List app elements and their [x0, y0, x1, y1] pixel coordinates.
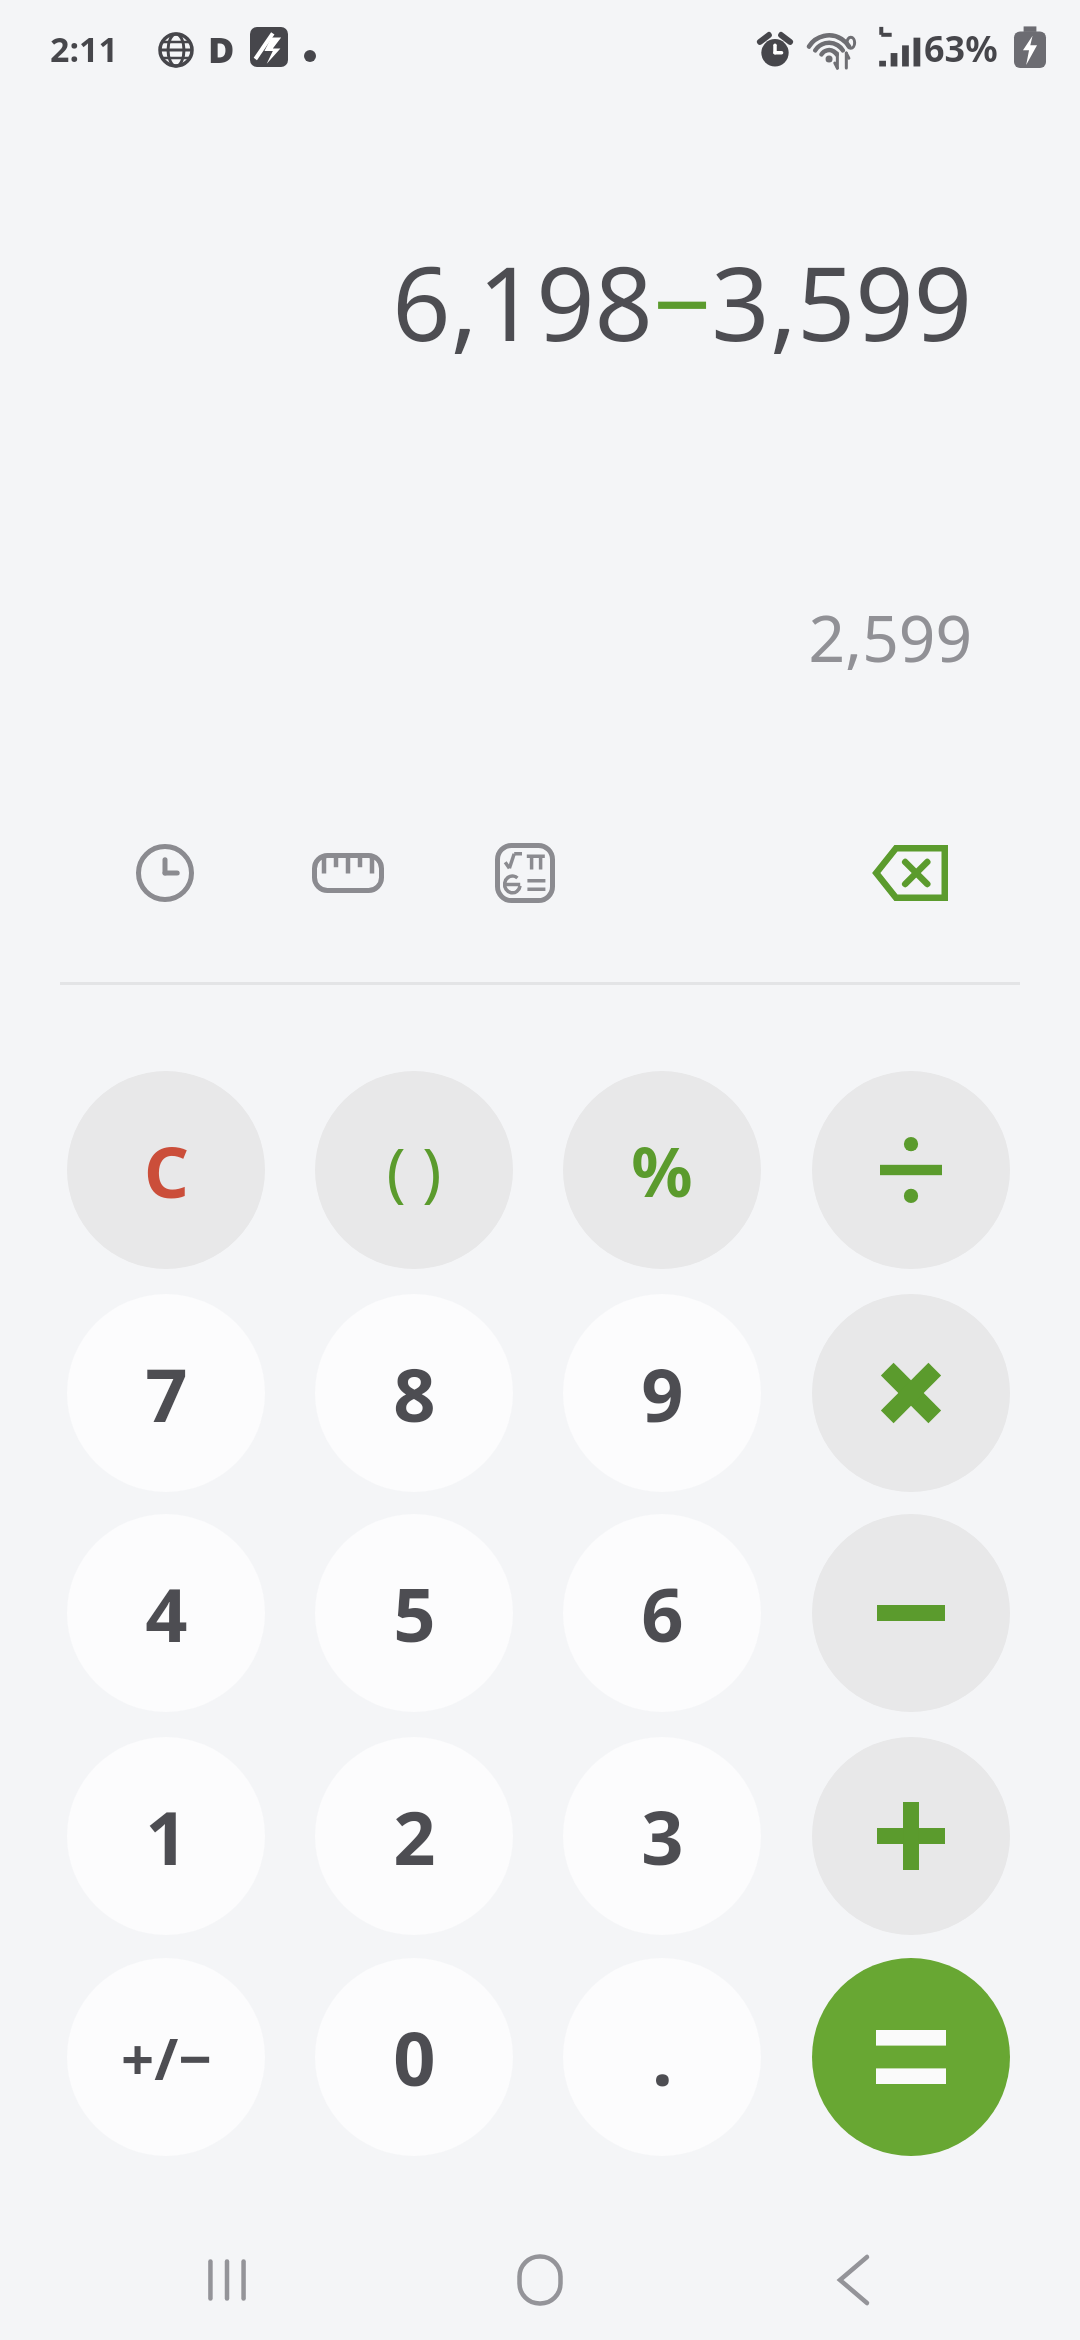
- button[interactable]: Equals: [812, 1958, 1010, 2156]
- staticText: %: [631, 1124, 693, 1217]
- button[interactable]: 7: [67, 1294, 265, 1492]
- button[interactable]: ( ): [315, 1071, 513, 1269]
- staticText: D: [208, 25, 235, 74]
- button[interactable]: Unit converter: [293, 818, 403, 928]
- staticText: 8: [393, 1343, 436, 1444]
- button[interactable]: Multiply: [812, 1294, 1010, 1492]
- button[interactable]: 4: [67, 1514, 265, 1712]
- staticText: 2: [393, 1786, 436, 1887]
- staticText: 2,599: [0, 594, 972, 681]
- button[interactable]: Minus: [812, 1514, 1010, 1712]
- button[interactable]: 9: [563, 1294, 761, 1492]
- staticText: 4: [145, 1563, 188, 1664]
- staticText: 6: [641, 1563, 684, 1664]
- button[interactable]: 1: [67, 1737, 265, 1935]
- button[interactable]: 8: [315, 1294, 513, 1492]
- staticText: 9: [641, 1343, 684, 1444]
- button[interactable]: %: [563, 1071, 761, 1269]
- staticText: C: [144, 1123, 189, 1218]
- button[interactable]: 5: [315, 1514, 513, 1712]
- button[interactable]: Backspace: [855, 818, 965, 928]
- button[interactable]: Back: [798, 2225, 908, 2335]
- button[interactable]: Divide: [812, 1071, 1010, 1269]
- staticText: 6,198−3,599: [0, 232, 972, 371]
- button[interactable]: History: [110, 818, 220, 928]
- button[interactable]: 0: [315, 1958, 513, 2156]
- staticText: +/−: [121, 2018, 212, 2097]
- button[interactable]: Scientific calculator: [470, 818, 580, 928]
- staticText: 1: [145, 1786, 188, 1887]
- button[interactable]: +/−: [67, 1958, 265, 2156]
- staticText: .: [652, 2007, 673, 2108]
- button[interactable]: 3: [563, 1737, 761, 1935]
- staticText: 3: [641, 1786, 684, 1887]
- button[interactable]: 2: [315, 1737, 513, 1935]
- staticText: 7: [145, 1343, 188, 1444]
- button[interactable]: Plus: [812, 1737, 1010, 1935]
- button[interactable]: 6: [563, 1514, 761, 1712]
- staticText: 0: [393, 2007, 436, 2108]
- staticText: 5: [393, 1563, 436, 1664]
- button[interactable]: C: [67, 1071, 265, 1269]
- staticText: ( ): [386, 1127, 442, 1214]
- staticText: 2:11: [50, 26, 118, 72]
- staticText: 63%: [924, 24, 998, 73]
- button[interactable]: Home: [485, 2225, 595, 2335]
- button[interactable]: .: [563, 1958, 761, 2156]
- button[interactable]: Recents: [172, 2225, 282, 2335]
